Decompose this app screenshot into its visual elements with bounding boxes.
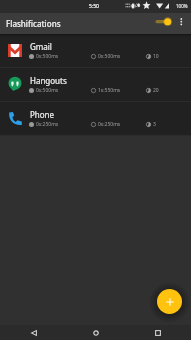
- button[interactable]: Home: [84, 325, 107, 340]
- button[interactable]: Add: [157, 289, 182, 314]
- button[interactable]: More options: [175, 13, 188, 30]
- staticText: 1s:550ms: [98, 87, 121, 94]
- button[interactable]: Gmail: [0, 34, 191, 68]
- staticText: 0s:250ms: [98, 121, 121, 128]
- staticText: 0s:250ms: [36, 121, 59, 128]
- staticText: Gmail: [30, 41, 52, 52]
- staticText: Phone: [30, 109, 55, 120]
- staticText: 3: [153, 121, 156, 128]
- staticText: 20: [153, 87, 159, 94]
- button[interactable]: Recents: [146, 325, 169, 340]
- button[interactable]: Back: [22, 325, 45, 340]
- staticText: 0s:500ms: [98, 53, 121, 60]
- staticText: 0s:500ms: [36, 53, 59, 60]
- staticText: Hangouts: [30, 75, 67, 86]
- button[interactable]: Hangouts: [0, 68, 191, 102]
- staticText: 10: [153, 53, 159, 60]
- staticText: 100%: [176, 3, 188, 9]
- staticText: 0s:500ms: [36, 87, 59, 94]
- staticText: Flashifications: [6, 18, 61, 29]
- button[interactable]: Phone: [0, 102, 191, 136]
- button[interactable]: Enable flash notifications: [152, 14, 174, 30]
- staticText: 5:50: [89, 3, 99, 10]
